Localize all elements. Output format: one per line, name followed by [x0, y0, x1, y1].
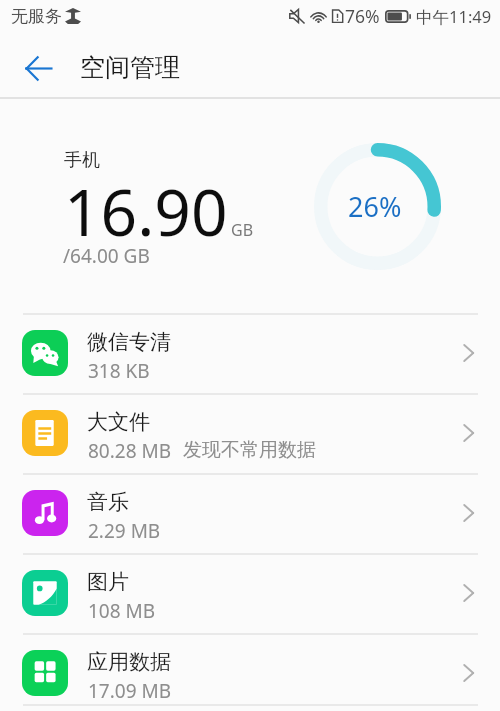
staticText: 16.90: [64, 168, 228, 255]
button[interactable]: 大文件: [0, 393, 500, 473]
staticText: 80.28 MB: [88, 438, 172, 464]
staticText: GB: [231, 219, 254, 241]
button[interactable]: 音乐: [0, 473, 500, 553]
staticText: 108 MB: [88, 598, 156, 624]
staticText: 手机: [64, 149, 100, 172]
staticText: 应用数据: [87, 649, 171, 675]
staticText: 中午11:49: [416, 5, 492, 28]
staticText: 76%: [345, 4, 380, 28]
staticText: /64.00 GB: [63, 243, 150, 269]
button[interactable]: 微信专清: [0, 313, 500, 393]
staticText: 318 KB: [88, 358, 150, 384]
staticText: 26%: [348, 188, 402, 225]
staticText: 17.09 MB: [88, 678, 172, 704]
staticText: 大文件: [87, 409, 150, 435]
button[interactable]: 应用数据: [0, 633, 500, 711]
staticText: 2.29 MB: [88, 518, 161, 544]
staticText: 空间管理: [80, 52, 180, 83]
staticText: 图片: [87, 569, 129, 595]
staticText: 无服务: [11, 6, 62, 27]
staticText: 微信专清: [87, 329, 171, 355]
button[interactable]: Back: [12, 42, 64, 94]
staticText: 发现不常用数据: [183, 438, 316, 462]
staticText: 音乐: [87, 489, 129, 515]
button[interactable]: 图片: [0, 553, 500, 633]
